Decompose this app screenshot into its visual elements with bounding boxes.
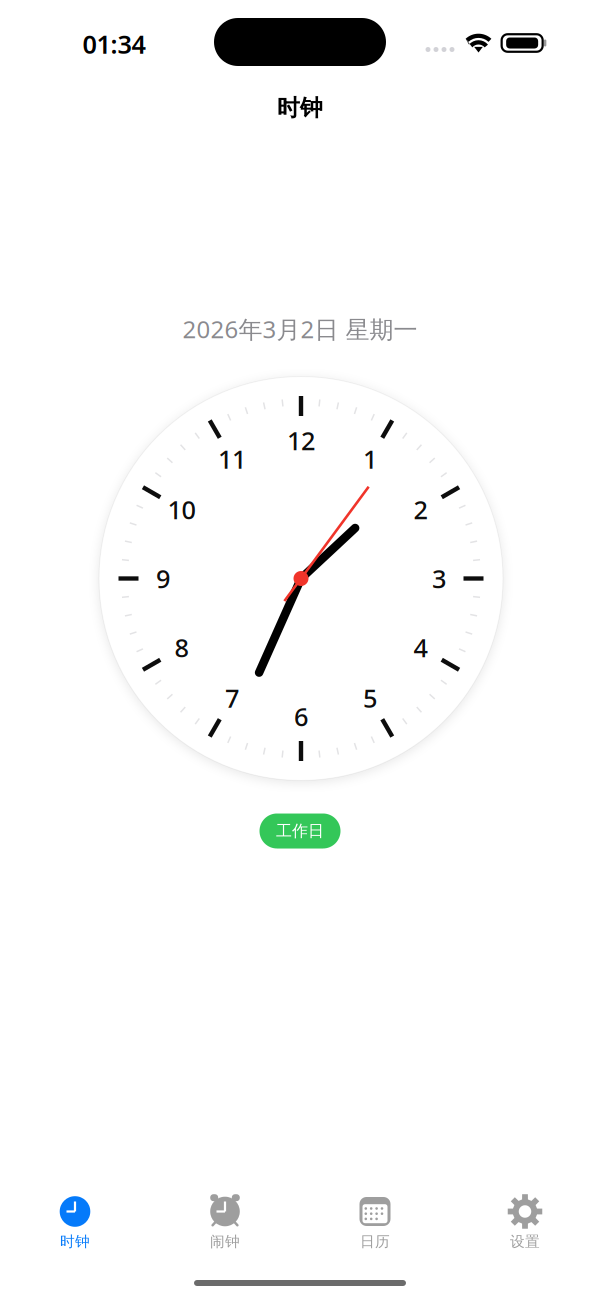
button[interactable]: 日历 [300,1186,450,1258]
button[interactable]: 闹钟 [150,1186,300,1258]
staticText: 3 [432,562,446,595]
staticText: 工作日 [276,821,324,841]
button[interactable]: 工作日 [259,813,340,848]
staticText: 日历 [360,1232,390,1250]
staticText: 10 [167,493,195,526]
staticText: 12 [287,424,315,457]
staticText: 11 [218,442,246,476]
button[interactable]: 时钟 [0,1186,150,1258]
staticText: 8 [174,631,188,664]
staticText: 设置 [510,1232,540,1250]
staticText: 时钟 [277,94,323,122]
staticText: 01:34 [82,27,145,61]
staticText: 6 [294,700,308,733]
staticText: 9 [156,562,170,595]
staticText: 5 [363,681,377,715]
staticText: 2026年3月2日 星期一 [182,313,417,345]
button[interactable]: 时钟 [240,90,360,126]
staticText: 时钟 [60,1232,90,1250]
button[interactable]: 设置 [450,1186,600,1258]
staticText: 7 [225,681,239,715]
staticText: 1 [363,442,377,476]
staticText: 闹钟 [210,1232,240,1250]
staticText: 2 [413,493,427,526]
staticText: 4 [413,631,427,664]
